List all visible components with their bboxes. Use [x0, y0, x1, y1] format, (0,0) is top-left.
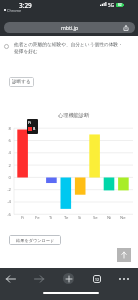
staticText: 心理機能診断: [58, 112, 90, 119]
staticText: 0: [8, 175, 11, 181]
staticText: Fi: [21, 215, 25, 221]
staticText: 診断する: [12, 79, 31, 85]
staticText: mbti.jp: [61, 24, 79, 31]
staticText: 8: [8, 126, 11, 132]
staticText: Si: [78, 215, 82, 221]
button[interactable]: Share: [122, 24, 130, 32]
button[interactable]: 診断する: [9, 77, 34, 87]
button[interactable]: Back: [3, 271, 19, 287]
staticText: 12: [95, 277, 99, 282]
button[interactable]: Tabs: [89, 271, 105, 287]
staticText: -2: [7, 187, 11, 193]
button[interactable]: mbti.jp: [4, 22, 135, 33]
staticText: 2: [8, 163, 11, 169]
button[interactable]: Menu: [116, 271, 132, 287]
staticText: -6: [7, 212, 11, 218]
staticText: Ti: [49, 215, 53, 221]
staticText: Fe: [35, 215, 40, 221]
staticText: 82: [118, 3, 122, 7]
staticText: 結果をダウンロード: [16, 238, 55, 243]
staticText: 他者との距離的な経験や、自分という個性の体験・発揮を好む: [14, 41, 124, 54]
staticText: 3:29: [19, 1, 32, 10]
button[interactable]: New tab: [63, 273, 74, 284]
staticText: 6: [8, 138, 11, 144]
button[interactable]: Forward: [31, 271, 47, 287]
staticText: 4: [8, 150, 11, 156]
staticText: Fi: [28, 120, 32, 125]
staticText: -4: [7, 199, 11, 205]
staticText: Ni: [107, 215, 112, 221]
staticText: Chrome: [7, 8, 22, 13]
staticText: Te: [64, 215, 69, 221]
staticText: Ne: [120, 215, 126, 221]
button[interactable]: 結果をダウンロード: [9, 235, 61, 245]
staticText: Se: [93, 215, 98, 221]
staticText: 5G: [108, 2, 114, 8]
staticText: 8: [33, 126, 36, 131]
button[interactable]: Scroll to top: [117, 248, 131, 262]
